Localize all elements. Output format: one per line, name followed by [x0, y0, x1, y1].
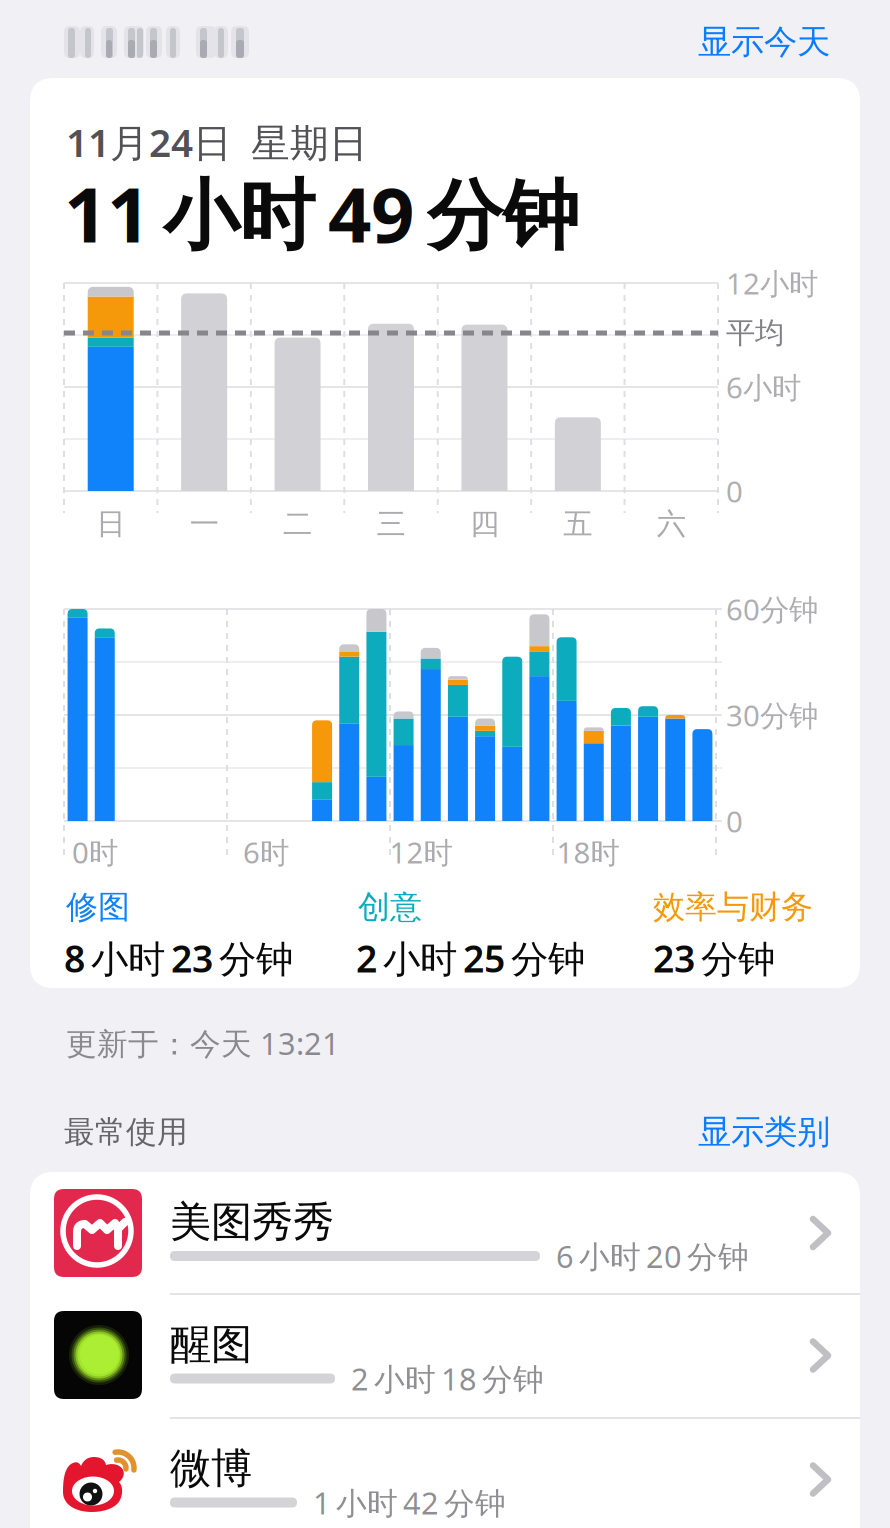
staticText: 四: [470, 506, 499, 542]
staticText: 6 小时 20 分钟: [556, 1236, 749, 1276]
staticText: 美图秀秀: [170, 1197, 334, 1247]
staticText: 平均: [726, 315, 784, 351]
staticText: 更新于：今天 13:21: [66, 1023, 340, 1063]
staticText: 显示今天: [698, 21, 830, 62]
staticText: 11月24日 星期日: [66, 116, 368, 168]
staticText: 显示类别: [698, 1111, 830, 1152]
staticText: 12小时: [726, 263, 818, 302]
staticText: 修图: [66, 887, 130, 927]
staticText: 创意: [358, 887, 422, 927]
staticText: 醒图: [170, 1319, 252, 1370]
staticText: 0: [726, 801, 743, 840]
staticText: 0时: [72, 832, 118, 871]
staticText: 五: [563, 506, 592, 542]
staticText: 0: [726, 471, 743, 510]
staticText: 2 小时 18 分钟: [351, 1358, 544, 1399]
staticText: 一: [190, 506, 219, 542]
staticText: 6小时: [726, 367, 801, 406]
staticText: 30分钟: [726, 695, 818, 734]
staticText: 11 小时 49 分钟: [64, 162, 579, 263]
staticText: 12时: [389, 832, 452, 871]
staticText: 日: [96, 506, 125, 542]
staticText: 8 小时 23 分钟: [64, 933, 293, 983]
staticText: 最常使用: [64, 1113, 188, 1151]
staticText: 18时: [556, 832, 619, 871]
staticText: 1 小时 42 分钟: [313, 1482, 506, 1523]
staticText: 60分钟: [726, 589, 818, 628]
button[interactable]: 醒图: [30, 1294, 860, 1417]
staticText: 三: [376, 506, 405, 542]
staticText: 效率与财务: [653, 887, 813, 927]
button[interactable]: 显示类别: [650, 1106, 830, 1158]
button[interactable]: 显示今天: [650, 16, 830, 68]
staticText: 微博: [170, 1443, 252, 1494]
staticText: 23 分钟: [653, 933, 775, 983]
button[interactable]: 微博: [30, 1418, 860, 1528]
staticText: 2 小时 25 分钟: [356, 933, 585, 983]
staticText: 二: [283, 506, 312, 542]
button[interactable]: 美图秀秀: [30, 1172, 860, 1295]
staticText: 六: [657, 506, 686, 542]
staticText: 6时: [243, 832, 289, 871]
